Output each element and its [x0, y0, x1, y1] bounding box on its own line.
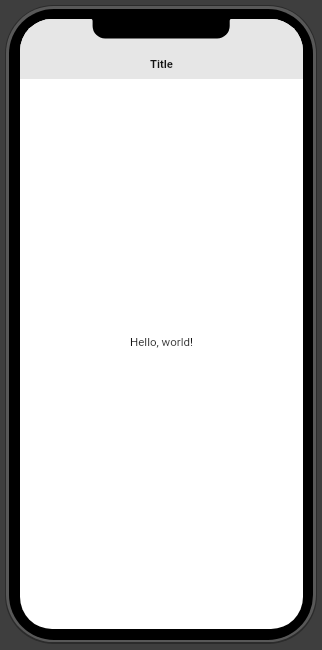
button[interactable]: [20, 19, 303, 79]
staticText: Hello, world!: [130, 335, 193, 348]
staticText: Title: [150, 58, 173, 71]
